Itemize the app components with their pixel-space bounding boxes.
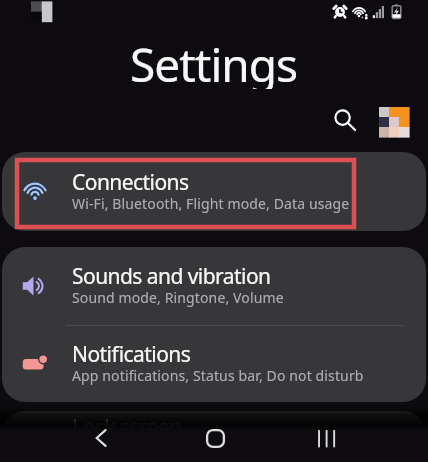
button[interactable]: Lock screen (2, 411, 426, 462)
button[interactable]: Home (191, 414, 239, 462)
staticText: Sound mode, Ringtone, Volume (72, 288, 284, 307)
button[interactable]: Notifications (2, 326, 426, 402)
button[interactable]: Recents (302, 414, 350, 462)
button[interactable]: Search (327, 102, 363, 138)
button[interactable]: Connections (2, 152, 426, 231)
staticText: App notifications, Status bar, Do not di… (72, 366, 364, 385)
staticText: Connections (72, 168, 189, 197)
staticText: Wi-Fi, Bluetooth, Flight mode, Data usag… (72, 194, 350, 213)
staticText: Screen lock type, Always On Display (72, 439, 311, 458)
staticText: Notifications (72, 340, 191, 369)
staticText: Sounds and vibration (72, 262, 271, 291)
button[interactable]: Sounds and vibration (2, 247, 426, 325)
staticText: Lock screen (72, 413, 182, 442)
staticText: Settings (130, 33, 298, 89)
button[interactable]: Account (379, 107, 409, 137)
button[interactable]: Back (78, 414, 126, 462)
